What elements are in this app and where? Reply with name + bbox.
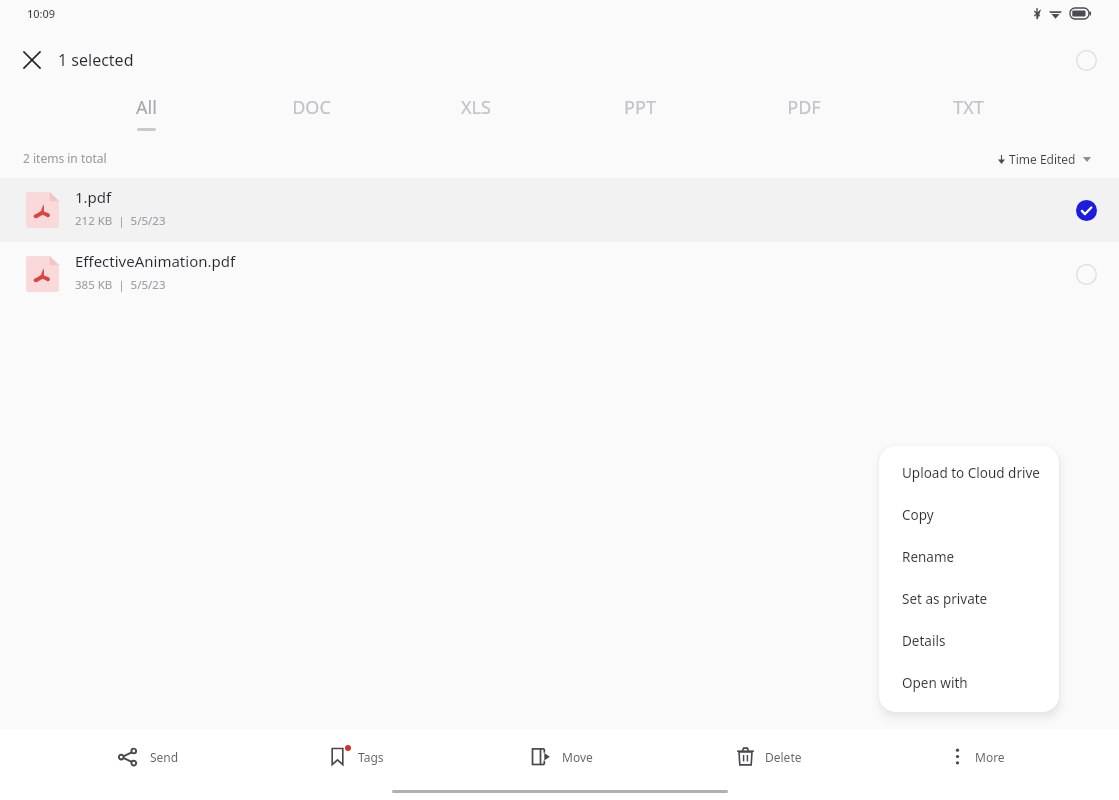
staticText: XLS — [461, 95, 491, 120]
button[interactable]: Copy — [879, 494, 1059, 536]
staticText: 385 KB | 5/5/23 — [75, 277, 166, 293]
staticText: More — [975, 749, 1005, 765]
button[interactable]: Select all — [1068, 42, 1104, 78]
staticText: Tags — [358, 749, 384, 765]
button[interactable]: Time Edited — [998, 151, 1091, 167]
button[interactable]: Send — [96, 729, 201, 784]
button[interactable]: Selected — [1068, 192, 1104, 228]
staticText: PPT — [624, 95, 656, 120]
button[interactable]: Set as private — [879, 578, 1059, 620]
staticText: EffectiveAnimation.pdf — [75, 251, 236, 271]
button[interactable]: Rename — [879, 536, 1059, 578]
staticText: 2 items in total — [23, 150, 107, 166]
button[interactable]: Delete — [714, 729, 824, 784]
button[interactable]: DOC — [229, 95, 394, 147]
staticText: Set as private — [902, 590, 988, 608]
staticText: TXT — [953, 95, 984, 120]
staticText: Upload to Cloud drive — [902, 464, 1040, 482]
button[interactable]: TXT — [886, 95, 1050, 147]
button[interactable]: Tags — [306, 729, 406, 784]
button[interactable]: Upload to Cloud drive — [879, 452, 1059, 494]
staticText: Open with — [902, 674, 968, 692]
button[interactable]: Details — [879, 620, 1059, 662]
button[interactable]: PDF — [722, 95, 886, 147]
button[interactable]: Open with — [879, 662, 1059, 704]
staticText: DOC — [292, 95, 331, 120]
button[interactable]: Close selection — [14, 42, 50, 78]
staticText: Time Edited — [1009, 151, 1076, 167]
staticText: Move — [562, 749, 593, 765]
button[interactable]: Move — [509, 729, 615, 784]
staticText: 10:09 — [27, 6, 56, 21]
staticText: Send — [150, 749, 179, 765]
staticText: 212 KB | 5/5/23 — [75, 213, 166, 229]
button[interactable]: PPT — [558, 95, 722, 147]
button[interactable]: EffectiveAnimation.pdf — [0, 242, 1119, 306]
staticText: Delete — [765, 749, 802, 765]
staticText: Copy — [902, 506, 934, 524]
button[interactable]: XLS — [394, 95, 558, 147]
staticText: 1.pdf — [75, 187, 112, 207]
button[interactable]: 1.pdf — [0, 178, 1119, 242]
staticText: 1 selected — [58, 49, 134, 71]
staticText: PDF — [787, 95, 821, 120]
button[interactable]: Not selected — [1068, 256, 1104, 292]
staticText: Details — [902, 632, 946, 650]
staticText: All — [136, 95, 157, 120]
button[interactable]: More — [926, 729, 1027, 784]
button[interactable]: All — [64, 95, 229, 147]
staticText: Rename — [902, 548, 955, 566]
